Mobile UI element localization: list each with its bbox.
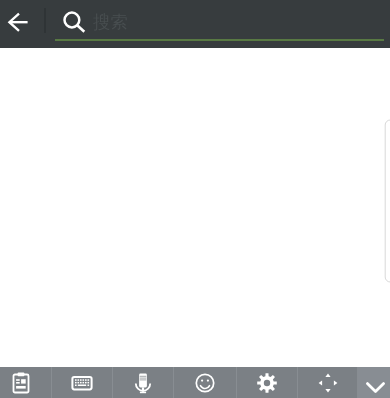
button[interactable]: Settings xyxy=(237,367,297,398)
button[interactable]: Voice input xyxy=(113,367,173,398)
button[interactable]: Collapse xyxy=(358,367,390,398)
button[interactable]: Clipboard xyxy=(0,367,51,398)
button[interactable]: Keyboard xyxy=(52,367,112,398)
staticText: 搜索 xyxy=(93,11,128,33)
button[interactable]: Emoji xyxy=(174,367,236,398)
button[interactable]: Move xyxy=(298,367,357,398)
button[interactable]: Back xyxy=(0,0,46,46)
